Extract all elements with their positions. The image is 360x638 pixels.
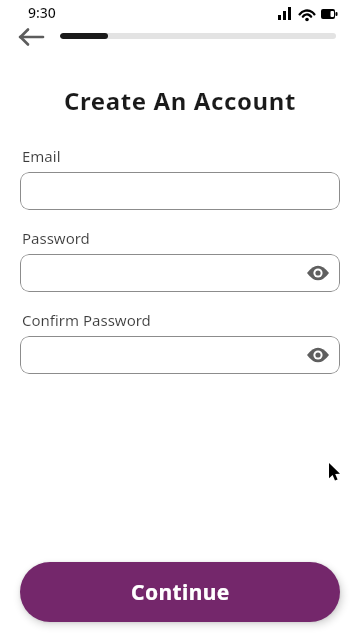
- staticText: Password: [22, 228, 90, 248]
- staticText: Continue: [131, 578, 230, 607]
- button[interactable]: [20, 172, 340, 210]
- staticText: Email: [22, 146, 61, 166]
- button[interactable]: [14, 24, 50, 50]
- staticText: Confirm Password: [22, 310, 151, 330]
- button[interactable]: Continue: [20, 562, 340, 622]
- staticText: 9:30: [28, 3, 56, 22]
- button[interactable]: [20, 254, 340, 292]
- button[interactable]: [20, 336, 340, 374]
- staticText: Create An Account: [0, 84, 360, 117]
